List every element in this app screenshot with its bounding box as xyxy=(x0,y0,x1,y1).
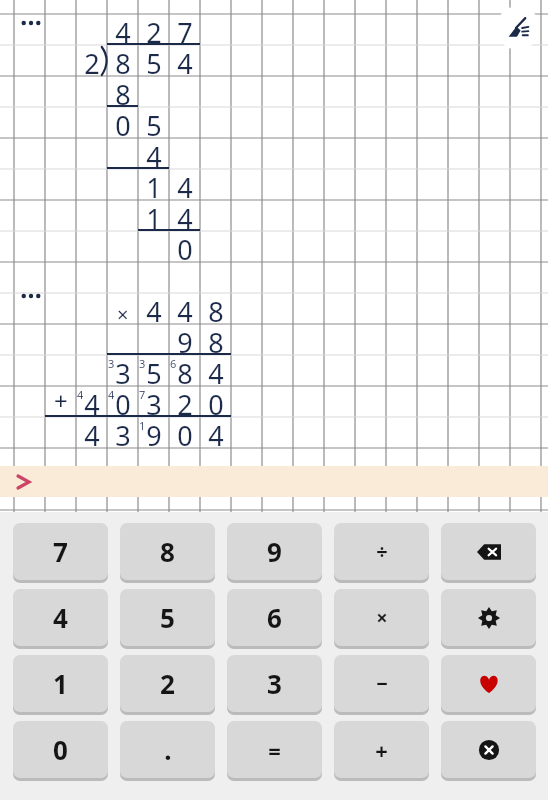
staticText: 1 xyxy=(53,666,68,701)
staticText: 5 xyxy=(146,45,162,76)
button[interactable]: 0 xyxy=(13,721,108,778)
staticText: 4 xyxy=(84,417,100,448)
button[interactable]: 2 xyxy=(120,655,215,712)
staticText: 4 xyxy=(108,387,115,399)
staticText: 4 xyxy=(84,386,100,417)
staticText: 4 xyxy=(77,387,84,399)
button[interactable]: 4 xyxy=(13,589,108,646)
staticText: 0 xyxy=(208,386,224,417)
staticText: 4 xyxy=(115,14,131,45)
staticText: ÷ xyxy=(376,538,388,565)
staticText: 8 xyxy=(208,324,224,355)
button[interactable]: Clear all xyxy=(496,6,540,50)
staticText: + xyxy=(375,735,388,765)
button[interactable]: Settings xyxy=(441,589,536,646)
button[interactable]: − xyxy=(334,655,429,712)
button[interactable]: Favorite xyxy=(441,655,536,712)
button[interactable]: = xyxy=(227,721,322,778)
staticText: 3 xyxy=(108,356,115,368)
staticText: 9 xyxy=(267,534,282,569)
button[interactable]: Problem 2 options xyxy=(16,285,46,307)
staticText: 4 xyxy=(146,138,162,169)
staticText: 0 xyxy=(115,386,131,417)
staticText: × xyxy=(376,604,388,631)
staticText: 2 xyxy=(160,666,175,701)
staticText: 8 xyxy=(177,355,193,386)
staticText: 4 xyxy=(177,200,193,231)
button[interactable]: 7 xyxy=(13,523,108,580)
button[interactable]: 1 xyxy=(13,655,108,712)
staticText: 3 xyxy=(146,386,162,417)
staticText: 1 xyxy=(146,169,162,200)
button[interactable]: . xyxy=(120,721,215,778)
staticText: 3 xyxy=(139,356,146,368)
staticText: 9 xyxy=(177,324,193,355)
button[interactable]: Backspace xyxy=(441,523,536,580)
staticText: 4 xyxy=(177,169,193,200)
button[interactable]: 5 xyxy=(120,589,215,646)
staticText: 8 xyxy=(208,293,224,324)
button[interactable]: 8 xyxy=(120,523,215,580)
staticText: 7 xyxy=(53,534,68,569)
staticText: 6 xyxy=(267,600,282,635)
staticText: . xyxy=(164,732,172,767)
staticText: 5 xyxy=(146,107,162,138)
staticText: 3 xyxy=(267,666,282,701)
staticText: 7 xyxy=(139,387,146,399)
staticText: 0 xyxy=(177,417,193,448)
staticText: = xyxy=(268,735,281,765)
button[interactable]: 3 xyxy=(227,655,322,712)
staticText: 3 xyxy=(115,417,131,448)
staticText: + xyxy=(54,384,68,415)
staticText: 1 xyxy=(146,200,162,231)
staticText: − xyxy=(376,670,388,697)
button[interactable]: × xyxy=(334,589,429,646)
staticText: 4 xyxy=(208,355,224,386)
staticText: 4 xyxy=(208,417,224,448)
staticText: 0 xyxy=(115,107,131,138)
staticText: 0 xyxy=(177,231,193,262)
staticText: 5 xyxy=(146,355,162,386)
staticText: × xyxy=(117,301,129,328)
staticText: 5 xyxy=(160,600,175,635)
button[interactable]: 6 xyxy=(227,589,322,646)
staticText: 8 xyxy=(115,76,131,107)
staticText: 4 xyxy=(177,45,193,76)
staticText: 8 xyxy=(160,534,175,569)
staticText: 6 xyxy=(170,356,177,368)
button[interactable] xyxy=(0,466,548,497)
staticText: 1 xyxy=(139,418,146,430)
staticText: 4 xyxy=(146,293,162,324)
button[interactable]: ÷ xyxy=(334,523,429,580)
button[interactable]: + xyxy=(334,721,429,778)
staticText: 2 xyxy=(146,14,162,45)
staticText: 3 xyxy=(115,355,131,386)
staticText: 2 xyxy=(84,45,100,76)
button[interactable]: 9 xyxy=(227,523,322,580)
staticText: 7 xyxy=(177,14,193,45)
button[interactable]: Close xyxy=(441,721,536,778)
staticText: 0 xyxy=(53,732,68,767)
staticText: 2 xyxy=(177,386,193,417)
staticText: 9 xyxy=(146,417,162,448)
staticText: 4 xyxy=(177,293,193,324)
button[interactable]: Problem 1 options xyxy=(16,12,46,34)
staticText: 4 xyxy=(53,600,68,635)
staticText: 8 xyxy=(115,45,131,76)
